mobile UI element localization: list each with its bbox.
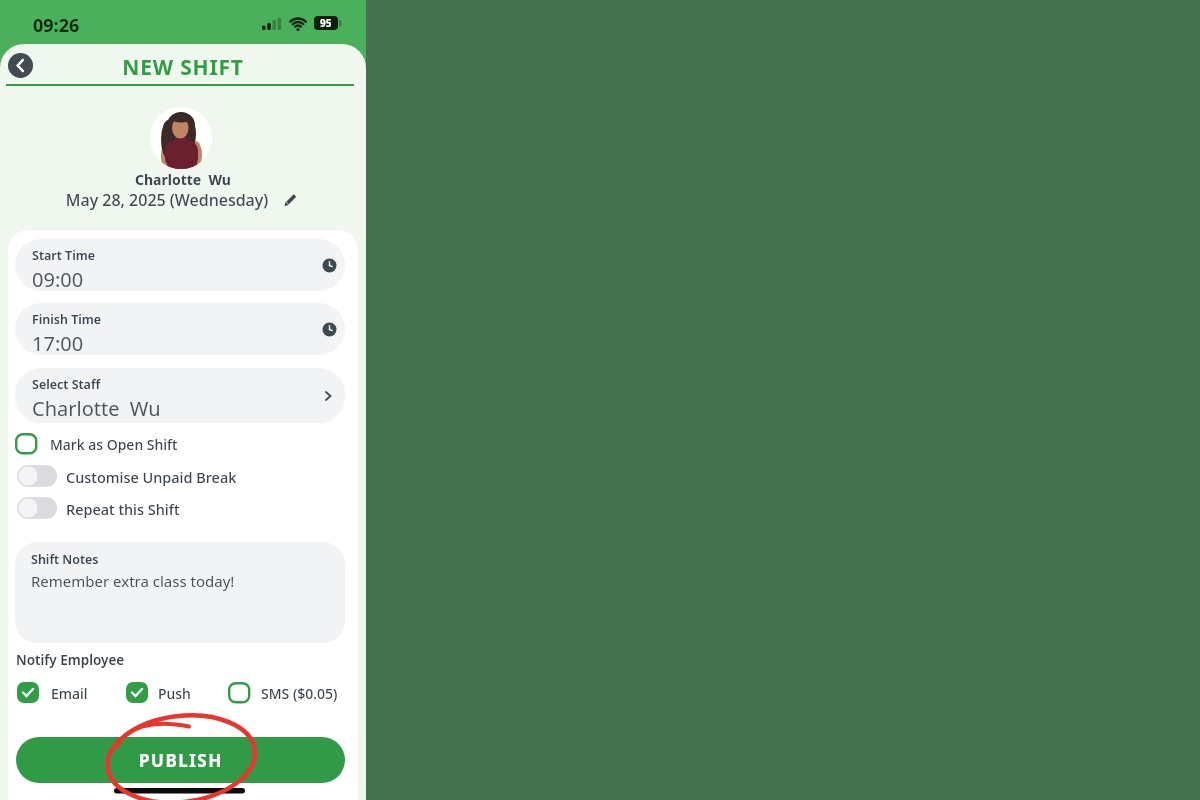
staticText: Customise Unpaid Break [66, 467, 237, 487]
staticText: Shift Notes [31, 551, 99, 568]
button[interactable] [126, 682, 149, 704]
staticText: Mark as Open Shift [50, 435, 178, 454]
staticText: Notify Employee [16, 651, 125, 669]
staticText: 09:00 [32, 266, 84, 291]
button[interactable] [8, 53, 33, 78]
button[interactable] [17, 465, 57, 487]
staticText: May 28, 2025 (Wednesday) [0, 189, 350, 211]
button[interactable]: Shift Notes [15, 542, 345, 643]
staticText: Remember extra class today! [31, 571, 235, 591]
staticText: 09:26 [33, 13, 80, 38]
staticText: SMS ($0.05) [261, 684, 338, 703]
button[interactable] [228, 682, 251, 704]
staticText: 95 [320, 16, 332, 30]
staticText: Email [51, 684, 88, 703]
staticText: Repeat this Shift [66, 499, 180, 519]
staticText: NEW SHIFT [0, 53, 366, 82]
button[interactable] [17, 682, 40, 704]
staticText: Select Staff [32, 376, 101, 393]
button[interactable]: Select Staff [15, 368, 345, 423]
button[interactable] [15, 433, 38, 455]
button[interactable]: PUBLISH [16, 737, 345, 783]
staticText: Push [158, 684, 191, 703]
staticText: Charlotte Wu [0, 170, 366, 189]
staticText: 17:00 [32, 330, 84, 355]
staticText: Charlotte Wu [32, 395, 161, 422]
staticText: PUBLISH [139, 749, 223, 772]
staticText: Finish Time [32, 311, 102, 328]
button[interactable]: Finish Time [15, 303, 345, 355]
staticText: Start Time [32, 247, 95, 264]
button[interactable]: Start Time [15, 239, 345, 291]
button[interactable] [17, 497, 57, 519]
